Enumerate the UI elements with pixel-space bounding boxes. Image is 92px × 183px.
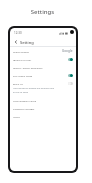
staticText: You can edit or disable the ad block rul… [13, 87, 56, 94]
staticText: Clear Browser Cache [13, 99, 37, 102]
staticText: Block Ad [13, 82, 23, 85]
staticText: Ignore SSL Error [13, 58, 32, 61]
button[interactable]: Password Manager [10, 104, 76, 112]
button[interactable]: Back [13, 39, 19, 45]
staticText: Setting [20, 40, 34, 45]
staticText: Full Screen Mode [13, 74, 33, 77]
button[interactable]: Search Engine [10, 47, 76, 55]
staticText: Import / Export Bookmark [13, 66, 43, 69]
staticText: Password Manager [13, 107, 35, 110]
staticText: Settings [0, 8, 85, 16]
button[interactable]: Import / Export Bookmark [10, 63, 76, 71]
button[interactable]: Ignore SSL Error [10, 55, 76, 63]
button[interactable]: About [10, 112, 76, 120]
staticText: Google [62, 49, 73, 53]
staticText: Search Engine [13, 50, 29, 53]
staticText: About [13, 115, 20, 118]
button[interactable]: Clear Browser Cache [10, 96, 76, 104]
button[interactable]: Full Screen Mode [10, 71, 76, 79]
staticText: 12:30 [14, 31, 22, 35]
button[interactable]: Block Ad [10, 79, 76, 96]
